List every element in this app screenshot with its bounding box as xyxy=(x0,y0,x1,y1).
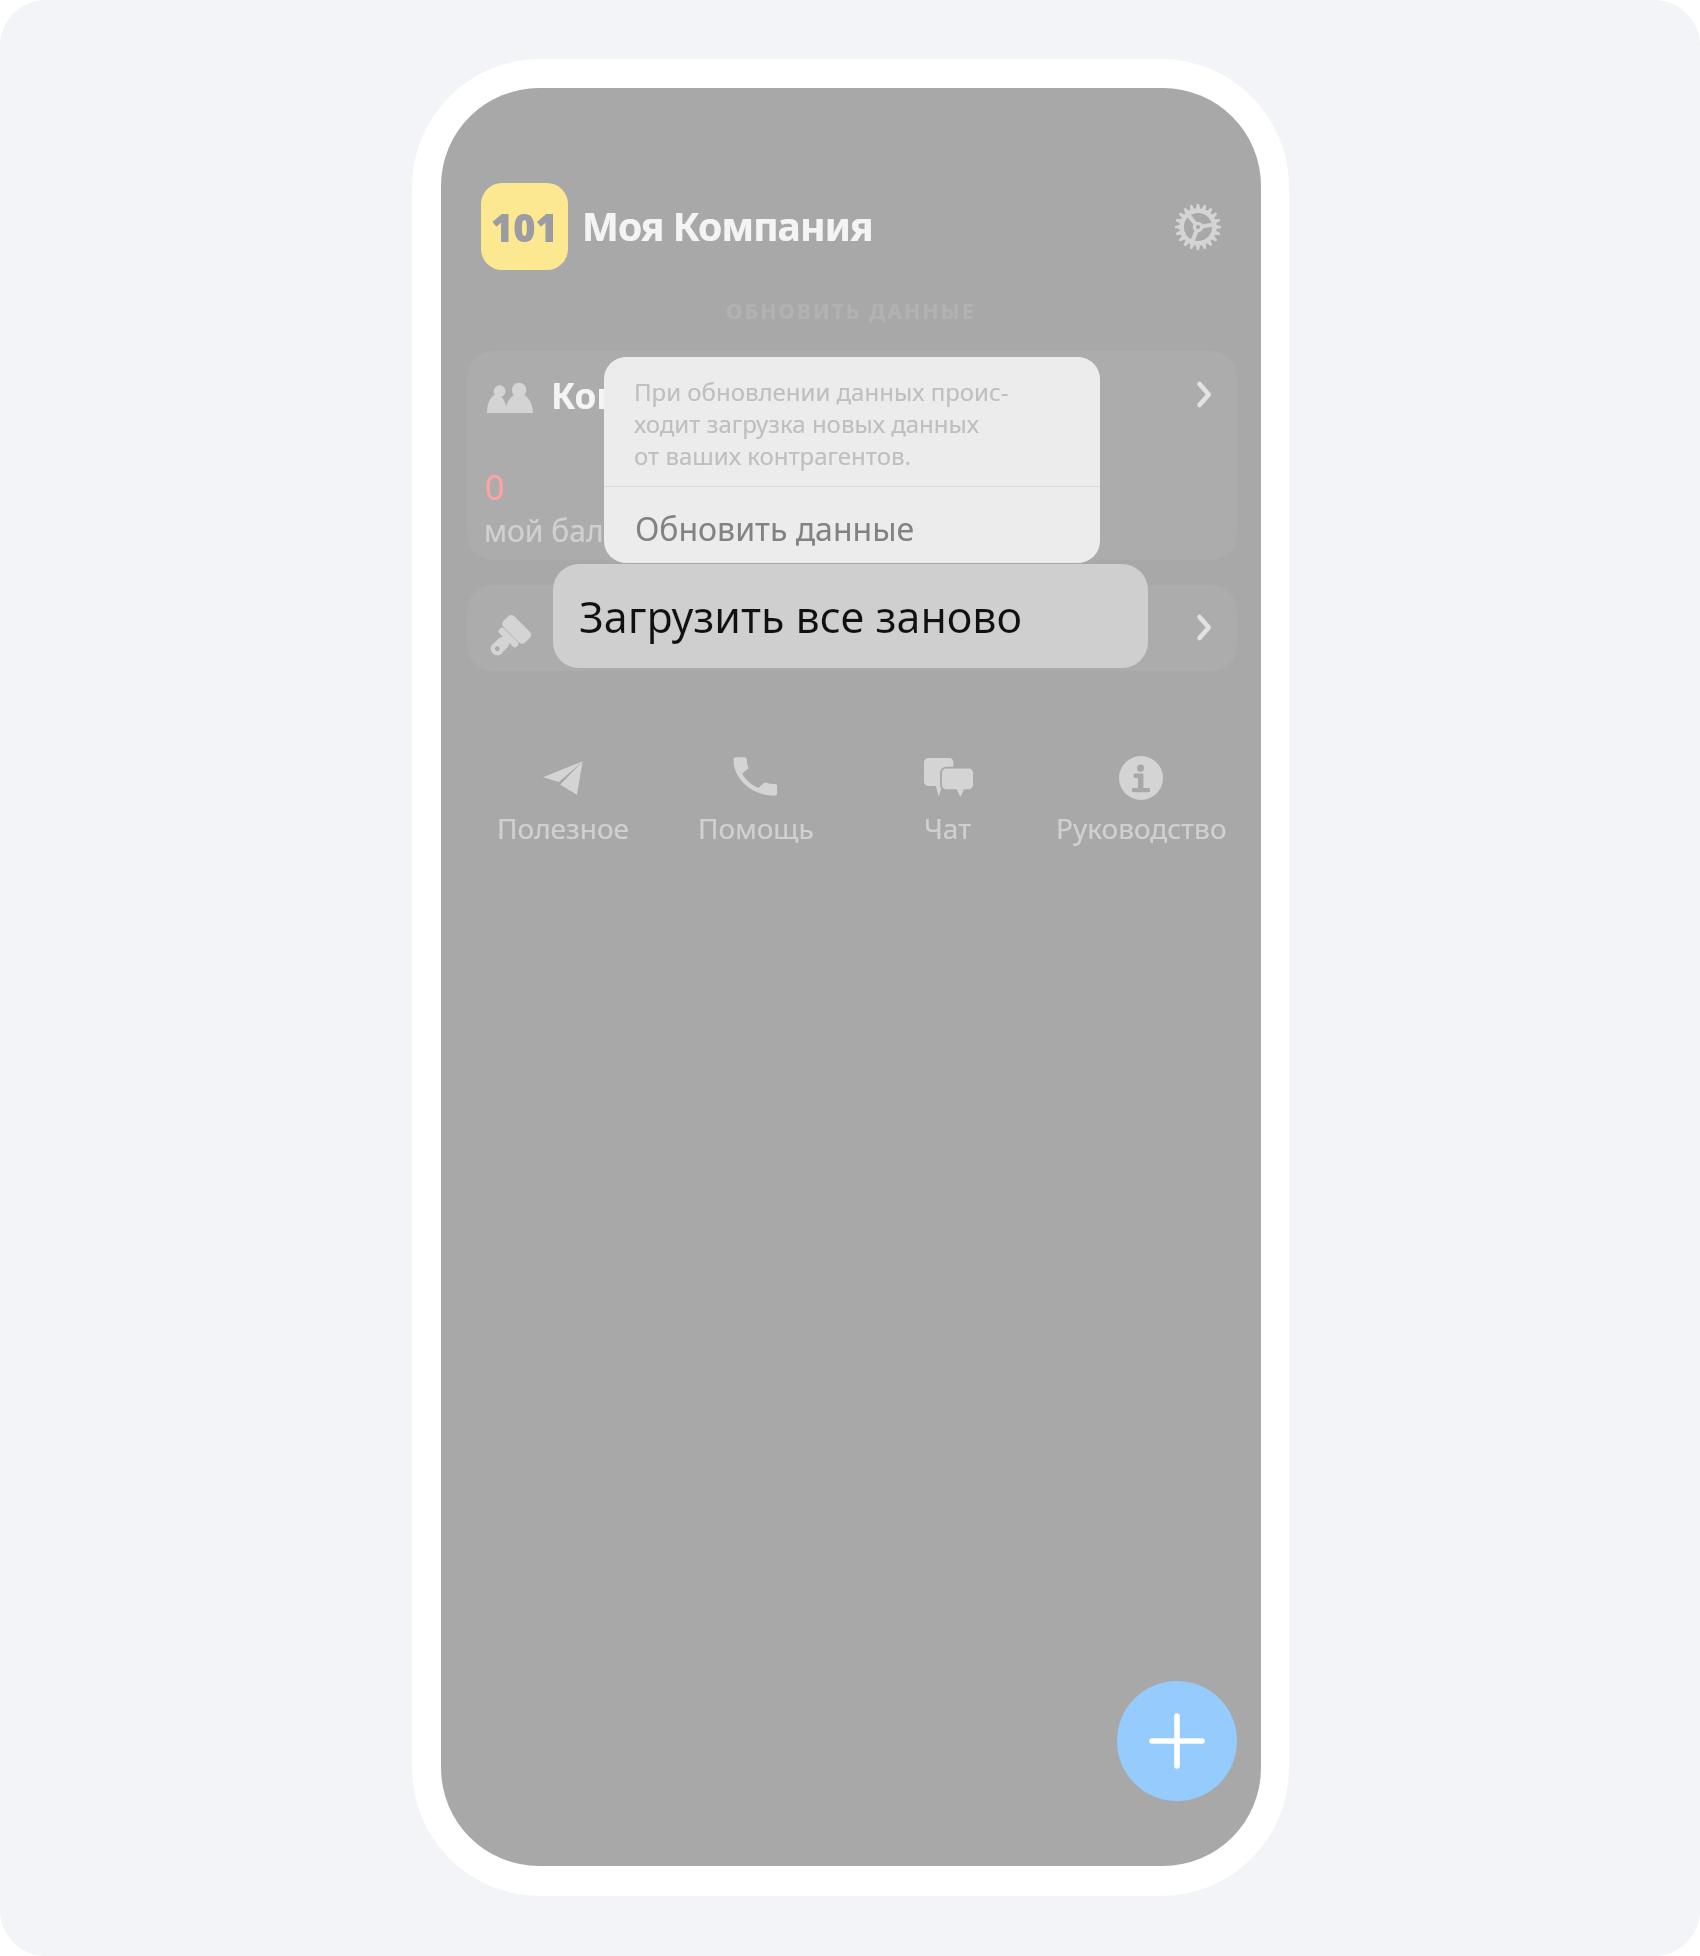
button[interactable]: Settings xyxy=(1168,197,1228,257)
button[interactable]: Контрагенты xyxy=(467,351,1237,560)
button[interactable]: Загрузить все заново xyxy=(553,564,1148,668)
button[interactable]: Руководство xyxy=(1045,755,1237,847)
button[interactable]: Оформление xyxy=(467,585,1237,671)
button[interactable]: Помощь xyxy=(660,755,852,847)
staticText: 101 xyxy=(491,201,558,253)
button[interactable]: Чат xyxy=(852,755,1044,847)
staticText: Полезное xyxy=(497,809,629,847)
staticText: При обновлении данных проис- ходит загру… xyxy=(634,375,1009,472)
staticText: Контрагенты xyxy=(551,372,788,420)
staticText: Помощь xyxy=(698,809,814,847)
staticText: мой баланс xyxy=(484,510,654,551)
button[interactable]: Обновить данные xyxy=(604,495,1100,563)
button[interactable]: Полезное xyxy=(467,755,659,847)
staticText: Загрузить все заново xyxy=(579,587,1023,646)
staticText: Обновить данные xyxy=(635,507,915,551)
staticText: Руководство xyxy=(1056,809,1227,847)
staticText: Чат xyxy=(924,809,972,847)
button[interactable]: Add xyxy=(1117,1681,1237,1801)
staticText: 0 xyxy=(485,464,505,510)
staticText: Моя Компания xyxy=(582,199,873,252)
